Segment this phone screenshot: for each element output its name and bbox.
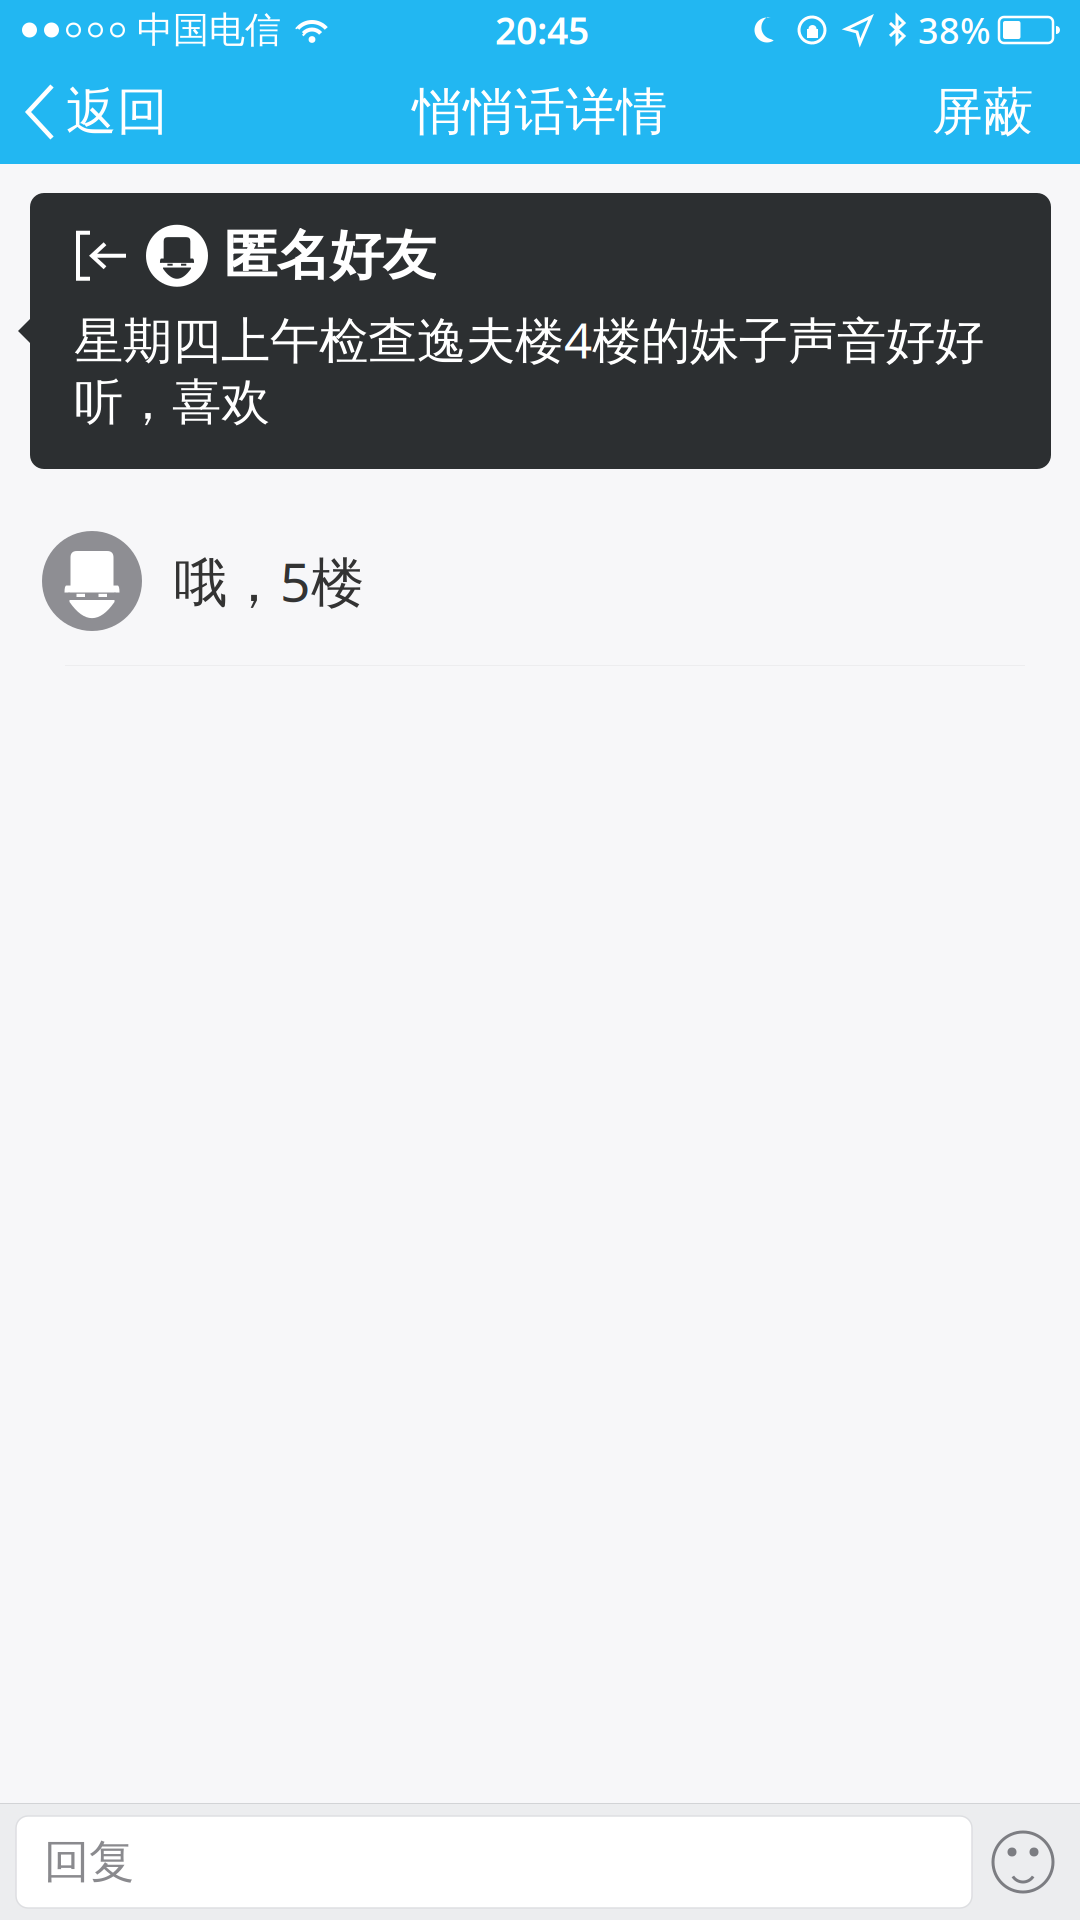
staticText: 屏蔽 <box>932 81 1034 143</box>
staticText: 中国电信 <box>137 8 281 52</box>
button[interactable]: 返回 <box>0 60 186 164</box>
staticText: 悄悄话详情 <box>412 81 667 143</box>
staticText: 星期四上午检查逸夫楼4楼的妹子声音好好听，喜欢 <box>74 306 984 433</box>
staticText: 20:45 <box>495 5 589 55</box>
button[interactable]: 回复 <box>16 1816 972 1908</box>
button[interactable]: Emoji <box>972 1816 1074 1908</box>
staticText: 回复 <box>44 1834 134 1890</box>
staticText: 匿名好友 <box>224 223 436 288</box>
staticText: 哦，5楼 <box>174 546 364 616</box>
button[interactable]: 屏蔽 <box>906 60 1080 164</box>
staticText: 38% <box>918 6 991 54</box>
button[interactable]: 匿名好友 <box>0 193 1080 469</box>
staticText: 返回 <box>66 81 168 143</box>
button[interactable]: 哦，5楼 <box>0 505 1080 666</box>
